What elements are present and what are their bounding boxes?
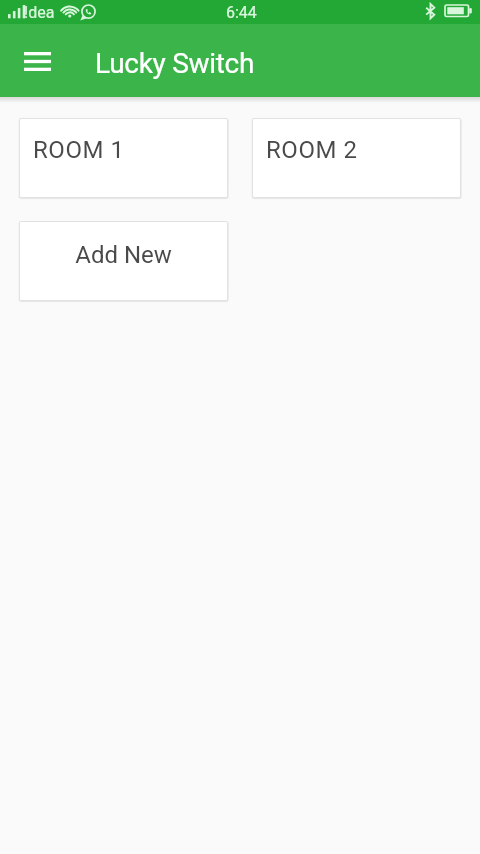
- staticText: Add New: [75, 241, 172, 269]
- button[interactable]: Add New: [19, 221, 228, 301]
- staticText: ROOM 2: [266, 136, 358, 164]
- staticText: Lucky Switch: [95, 47, 255, 80]
- staticText: 6:44: [226, 3, 257, 22]
- button[interactable]: ROOM 2: [252, 118, 461, 198]
- button[interactable]: Open navigation menu: [13, 37, 61, 85]
- button[interactable]: ROOM 1: [19, 118, 228, 198]
- staticText: !dea: [24, 3, 55, 22]
- staticText: ROOM 1: [33, 136, 125, 164]
